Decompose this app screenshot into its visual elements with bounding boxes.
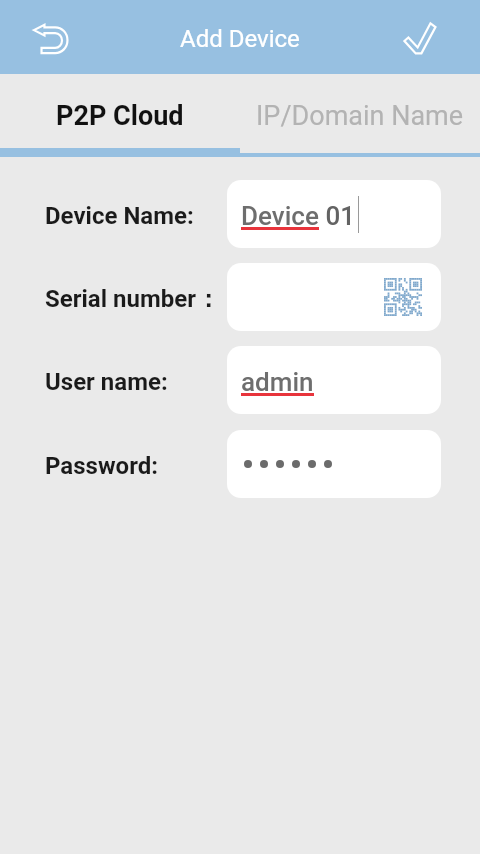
- staticText: P2P Cloud: [56, 100, 184, 132]
- button[interactable]: [227, 430, 441, 498]
- staticText: Add Device: [180, 25, 300, 53]
- staticText: Device: [241, 201, 319, 231]
- button[interactable]: Device: [227, 180, 441, 248]
- button[interactable]: admin: [227, 346, 441, 414]
- button[interactable]: Back: [21, 9, 77, 65]
- staticText: Serial number：: [45, 284, 220, 314]
- staticText: IP/Domain Name: [256, 100, 464, 132]
- button[interactable]: [227, 263, 441, 331]
- button[interactable]: IP/Domain Name: [240, 74, 480, 157]
- staticText: admin: [241, 367, 314, 397]
- staticText: Device Name:: [45, 202, 194, 230]
- staticText: 01: [319, 201, 356, 231]
- button[interactable]: Confirm: [391, 9, 447, 65]
- button[interactable]: P2P Cloud: [0, 74, 240, 157]
- staticText: User name:: [45, 368, 168, 396]
- staticText: Password:: [45, 452, 158, 480]
